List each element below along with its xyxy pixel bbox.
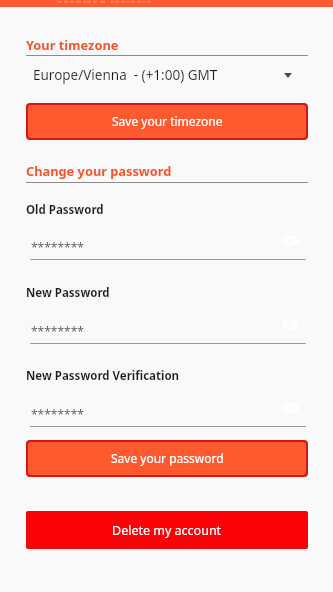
staticText: Change your password — [26, 162, 172, 179]
staticText: ******** — [31, 406, 84, 422]
staticText: New Password Verification — [26, 368, 180, 384]
button[interactable]: ******** — [26, 313, 308, 343]
staticText: Old Password — [26, 202, 104, 218]
staticText: New Password — [26, 285, 110, 301]
staticText: Your timezone — [26, 36, 119, 53]
button[interactable]: Save your timezone — [28, 105, 306, 138]
staticText: Europe/Vienna - (+1:00) GMT — [33, 66, 218, 84]
button[interactable]: ******** — [26, 396, 308, 426]
button[interactable]: Europe/Vienna - (+1:00) GMT — [26, 63, 308, 87]
staticText: ******** — [31, 323, 84, 339]
staticText: Save your password — [111, 450, 224, 466]
button[interactable]: Account settings — [0, 0, 333, 7]
staticText: Save your timezone — [112, 113, 223, 129]
button[interactable]: Save your password — [28, 442, 306, 475]
staticText: ******** — [31, 239, 84, 255]
button[interactable]: Delete my account — [26, 511, 308, 549]
staticText: Delete my account — [112, 522, 222, 539]
button[interactable]: ******** — [26, 229, 308, 259]
